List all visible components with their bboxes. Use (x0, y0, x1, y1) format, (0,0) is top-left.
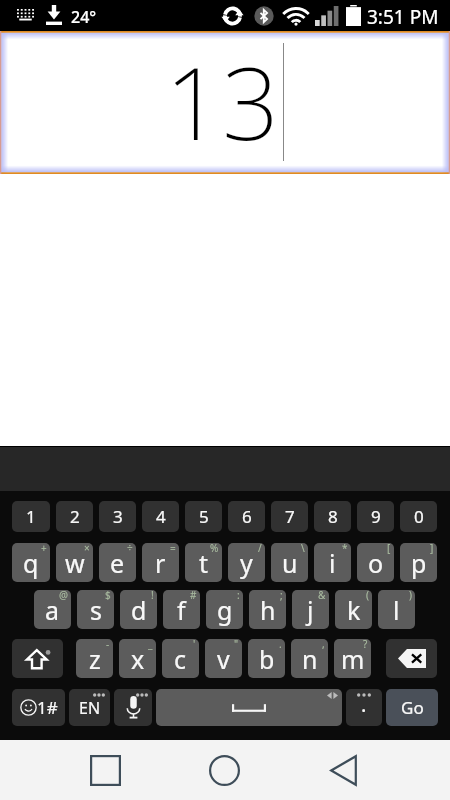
staticText: o (368, 546, 384, 580)
button[interactable]: e (99, 543, 136, 582)
staticText: . (279, 639, 282, 651)
staticText: + (41, 543, 47, 555)
button[interactable]: Home (195, 740, 450, 800)
button[interactable]: l (378, 590, 415, 629)
button[interactable]: 0 (400, 501, 437, 532)
button[interactable]: Go (386, 689, 438, 726)
button[interactable]: 4 (142, 501, 179, 532)
button[interactable]: c (162, 639, 199, 678)
button[interactable]: a (34, 590, 71, 629)
button[interactable]: d (120, 590, 157, 629)
button[interactable]: 8 (314, 501, 351, 532)
button[interactable]: s (77, 590, 114, 629)
staticText: 1 (26, 505, 36, 528)
staticText: m (341, 642, 365, 676)
staticText: y (240, 546, 253, 580)
staticText: b (259, 642, 275, 676)
button[interactable]: h (249, 590, 286, 629)
button[interactable]: Back (314, 740, 450, 800)
button[interactable]: y (228, 543, 265, 582)
staticText: 7 (285, 505, 295, 528)
staticText: % (210, 543, 219, 555)
button[interactable]: 5 (185, 501, 222, 532)
staticText: w (65, 546, 85, 580)
button[interactable]: 1 (12, 501, 50, 532)
staticText: j (307, 593, 314, 627)
staticText: ( (366, 590, 369, 602)
button[interactable]: 9 (357, 501, 394, 532)
button[interactable]: Symbols (12, 689, 65, 726)
staticText: 9 (371, 505, 381, 528)
button[interactable]: Shift (12, 639, 63, 678)
staticText: " (234, 639, 239, 651)
button[interactable]: 3 (99, 501, 136, 532)
button[interactable]: b (248, 639, 285, 678)
button[interactable]: t (185, 543, 222, 582)
staticText: l (393, 593, 400, 627)
button[interactable]: Period (346, 689, 382, 726)
button[interactable]: 7 (271, 501, 308, 532)
button[interactable]: u (271, 543, 308, 582)
staticText: [ (387, 543, 391, 555)
staticText: c (174, 642, 187, 676)
staticText: z (89, 642, 101, 676)
staticText: 1# (37, 696, 58, 719)
staticText: 5 (199, 505, 209, 528)
button[interactable]: w (56, 543, 93, 582)
staticText: $ (105, 590, 111, 602)
staticText: , (322, 639, 325, 651)
button[interactable]: m (334, 639, 371, 678)
button[interactable]: i (314, 543, 351, 582)
staticText: 3 (113, 505, 123, 528)
staticText: 3:51 PM (367, 4, 439, 30)
staticText: × (84, 543, 90, 555)
button[interactable]: Space (156, 689, 342, 726)
staticText: & (318, 590, 326, 602)
staticText: ; (280, 590, 283, 602)
button[interactable]: x (119, 639, 156, 678)
button[interactable]: k (335, 590, 372, 629)
button[interactable]: r (142, 543, 179, 582)
staticText: \ (301, 543, 305, 555)
staticText: e (110, 546, 125, 580)
staticText: s (90, 593, 102, 627)
button[interactable]: 2 (56, 501, 93, 532)
button[interactable]: o (357, 543, 394, 582)
staticText: @ (59, 590, 68, 602)
staticText: ÷ (127, 543, 133, 555)
staticText: g (217, 593, 233, 627)
staticText: = (170, 543, 176, 555)
button[interactable]: Language (69, 689, 110, 726)
staticText: 13 (165, 33, 279, 169)
button[interactable]: 6 (228, 501, 265, 532)
button[interactable]: g (206, 590, 243, 629)
staticText: q (23, 546, 39, 580)
button[interactable]: n (291, 639, 328, 678)
staticText: h (260, 593, 276, 627)
staticText: * (342, 543, 348, 555)
button[interactable]: Backspace (386, 639, 437, 678)
staticText: 0 (414, 505, 424, 528)
button[interactable]: 13 (0, 31, 450, 174)
button[interactable]: Voice input (114, 689, 152, 726)
staticText: - (106, 639, 110, 651)
button[interactable]: z (76, 639, 113, 678)
staticText: x (131, 642, 145, 676)
staticText: EN (79, 697, 101, 719)
staticText: d (131, 593, 147, 627)
button[interactable]: Recents (75, 740, 450, 800)
button[interactable]: q (12, 543, 50, 582)
staticText: n (302, 642, 318, 676)
button[interactable]: j (292, 590, 329, 629)
staticText: 6 (242, 505, 252, 528)
staticText: k (347, 593, 361, 627)
staticText: 24° (71, 6, 97, 28)
button[interactable]: v (205, 639, 242, 678)
staticText: f (177, 593, 186, 627)
staticText: u (282, 546, 298, 580)
staticText: 2 (70, 505, 80, 528)
staticText: . (361, 691, 367, 718)
button[interactable]: f (163, 590, 200, 629)
button[interactable]: p (400, 543, 437, 582)
staticText: / (258, 543, 262, 555)
